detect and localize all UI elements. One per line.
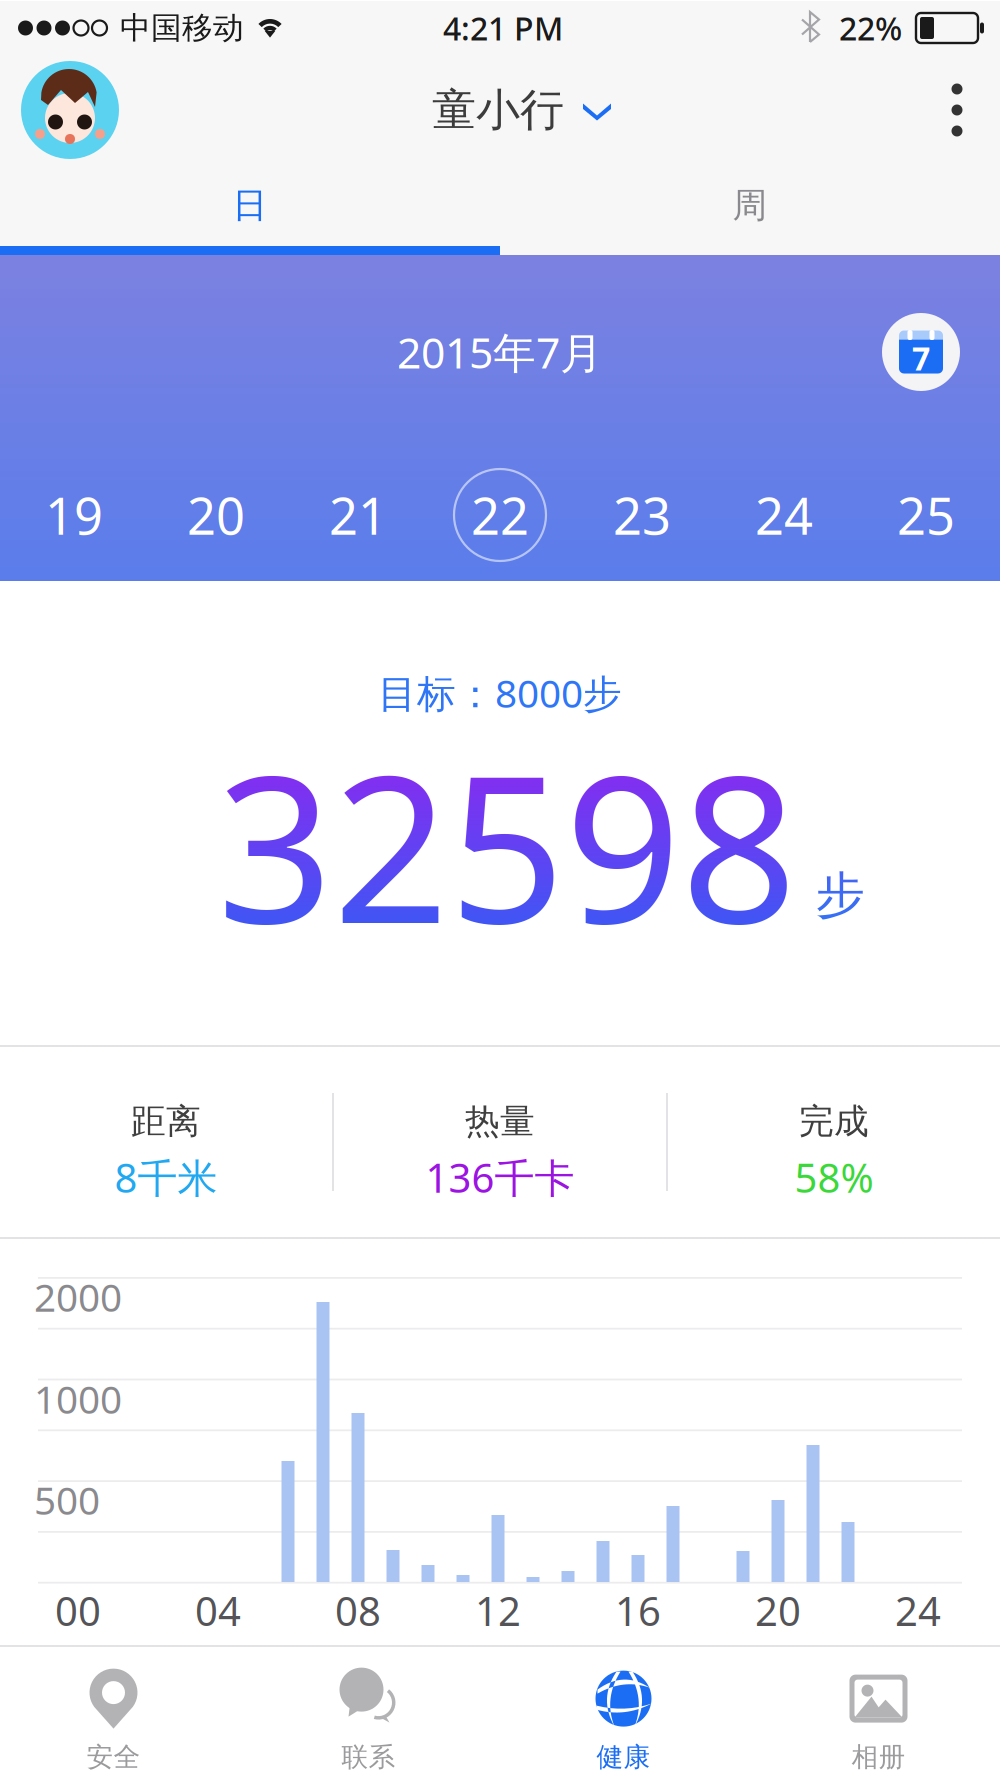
staticText: 8千米 [114,1151,217,1204]
staticText: 20 [187,481,245,549]
staticText: 25 [897,481,955,549]
staticText: 7 [912,337,930,379]
button[interactable]: Profile [0,55,119,165]
staticText: 24 [755,481,813,549]
staticText: 安全 [86,1741,140,1773]
staticText: 21 [329,481,387,549]
staticText: 04 [195,1584,241,1637]
button[interactable]: 23 [571,460,713,570]
staticText: 22% [839,7,902,49]
staticText: 00 [55,1584,101,1637]
button[interactable]: 周 [500,165,1000,246]
staticText: 20 [755,1584,801,1637]
staticText: 19 [45,481,103,549]
staticText: 12 [475,1584,521,1637]
staticText: 童小行 [432,83,564,137]
staticText: 完成 [799,1100,869,1143]
button[interactable]: 童小行 [394,71,606,149]
staticText: 联系 [341,1741,395,1773]
button[interactable]: 21 [287,460,429,570]
staticText: 日 [232,184,267,227]
staticText: 周 [732,184,767,227]
button[interactable]: 19 [3,460,145,570]
staticText: 500 [34,1474,100,1525]
staticText: 08 [335,1584,381,1637]
button[interactable]: 25 [855,460,997,570]
staticText: 中国移动 [120,9,244,47]
staticText: 24 [895,1584,941,1637]
staticText: 22 [471,481,529,549]
staticText: 2015年7月 [397,324,603,380]
button[interactable]: 安全 [0,1647,238,1777]
staticText: 16 [615,1584,661,1637]
staticText: 136千卡 [425,1151,574,1204]
button[interactable]: 20 [145,460,287,570]
staticText: 热量 [465,1100,535,1143]
button[interactable]: More options [914,55,1000,165]
button[interactable]: 22 [429,460,571,570]
staticText: 距离 [131,1100,201,1143]
button[interactable]: 日 [0,165,500,246]
button[interactable]: 健康 [498,1647,748,1777]
staticText: 23 [613,481,671,549]
staticText: 目标：8000步 [378,667,622,718]
staticText: 2000 [34,1271,122,1322]
staticText: 健康 [596,1741,650,1773]
staticText: 1000 [34,1373,122,1424]
button[interactable]: 联系 [243,1647,493,1777]
staticText: 相册 [851,1741,905,1773]
button[interactable]: Pick date [871,302,971,402]
staticText: 4:21 PM [443,7,563,49]
staticText: 58% [794,1151,873,1204]
button[interactable]: 24 [713,460,855,570]
button[interactable]: 相册 [753,1647,1000,1777]
